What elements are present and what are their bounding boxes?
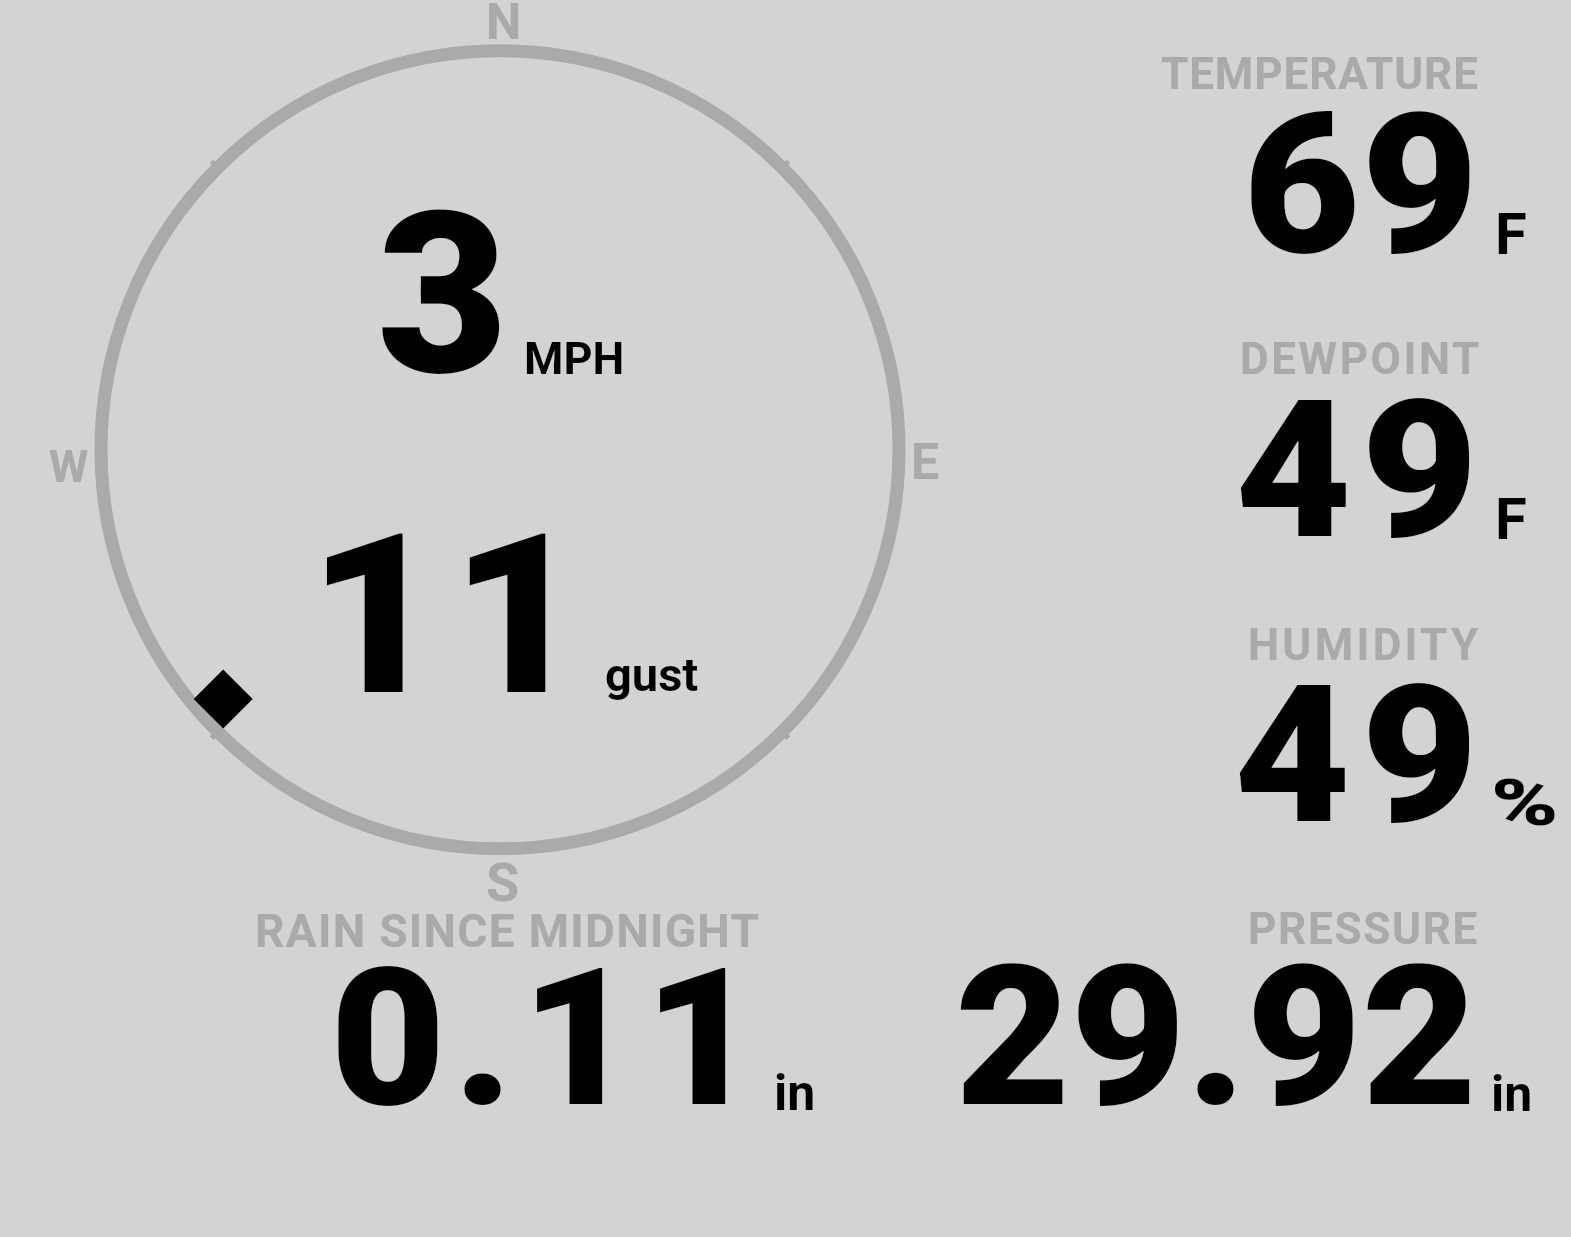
staticText: % [1491,766,1559,841]
staticText: DEWPOINT [1240,333,1482,385]
button[interactable]: Pressure 29.92 inches [930,895,1560,1120]
button[interactable]: Humidity 49 percent [1100,610,1560,840]
staticText: F [1495,200,1527,268]
staticText: 49 [1234,644,1489,868]
staticText: TEMPERATURE [1161,48,1479,100]
button[interactable]: Temperature 69 degrees Fahrenheit [1100,40,1560,270]
staticText: RAIN SINCE MIDNIGHT [255,904,761,958]
staticText: 29.92 [955,924,1478,1151]
staticText: MPH [524,332,625,385]
staticText: 49 [1235,359,1488,583]
staticText: PRESSURE [1248,903,1480,955]
staticText: gust [605,647,699,702]
staticText: 69 [1243,72,1479,299]
staticText: in [774,1064,816,1123]
staticText: W [49,440,89,493]
staticText: S [486,851,520,914]
staticText: in [1491,1065,1533,1124]
staticText: F [1495,485,1527,553]
button[interactable]: Dewpoint 49 degrees Fahrenheit [1100,325,1560,555]
staticText: 0.11 [330,927,767,1151]
staticText: 3 [377,164,508,427]
staticText: HUMIDITY [1248,619,1482,671]
staticText: 11 [308,486,594,746]
staticText: N [486,0,522,52]
button[interactable]: Wind 3 miles per hour, gusting 11, from … [85,35,915,875]
button[interactable]: Rain since midnight 0.11 inches [230,895,840,1120]
staticText: E [911,433,940,492]
